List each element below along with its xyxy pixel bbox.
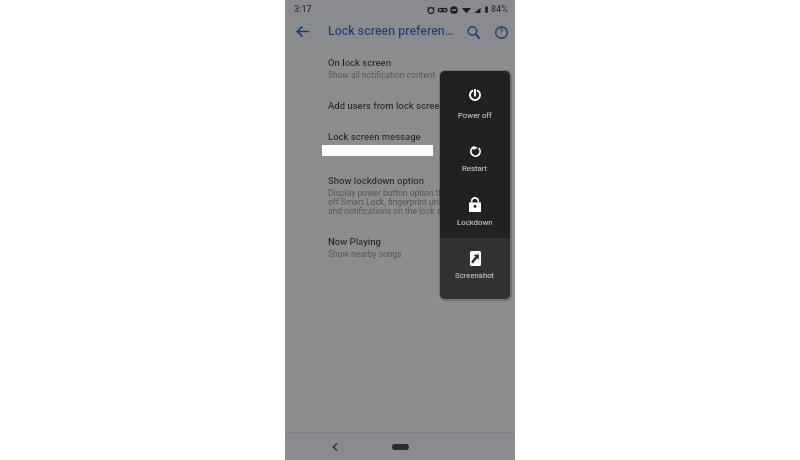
button[interactable]: Back <box>326 438 344 456</box>
staticText: 3:17 <box>294 4 312 15</box>
staticText: ? <box>499 27 504 38</box>
button[interactable]: Restart <box>440 127 510 181</box>
staticText: 84% <box>491 4 508 15</box>
button[interactable]: Lock screen message <box>285 131 515 156</box>
button[interactable]: Screenshot <box>440 238 510 299</box>
staticText: Show lockdown option <box>328 175 425 186</box>
staticText: Now Playing <box>328 236 381 247</box>
staticText: Lock screen preferen… <box>328 23 454 38</box>
staticText: Screenshot <box>455 271 495 280</box>
staticText: Lock screen message <box>328 131 421 142</box>
button[interactable]: Lockdown <box>440 181 510 238</box>
staticText: Lockdown <box>457 218 493 227</box>
staticText: Show all notification content <box>328 70 436 80</box>
button[interactable]: On lock screen <box>285 57 515 80</box>
button[interactable]: Search <box>462 21 484 43</box>
staticText: Restart <box>462 164 488 173</box>
staticText: Power off <box>458 111 492 120</box>
staticText: Display power button option that turns o… <box>328 188 473 216</box>
staticText: Show nearby songs <box>328 249 402 259</box>
button[interactable]: Navigate up <box>291 20 313 42</box>
button[interactable]: Home <box>385 440 415 454</box>
staticText: Add users from lock screen <box>328 100 445 111</box>
button[interactable]: Help <box>490 21 512 43</box>
button[interactable]: Now Playing <box>285 236 515 259</box>
button[interactable]: Add users from lock screen <box>285 100 515 111</box>
button[interactable]: Show lockdown option <box>285 175 515 216</box>
staticText: On lock screen <box>328 57 391 68</box>
button[interactable]: Power off <box>440 71 510 127</box>
